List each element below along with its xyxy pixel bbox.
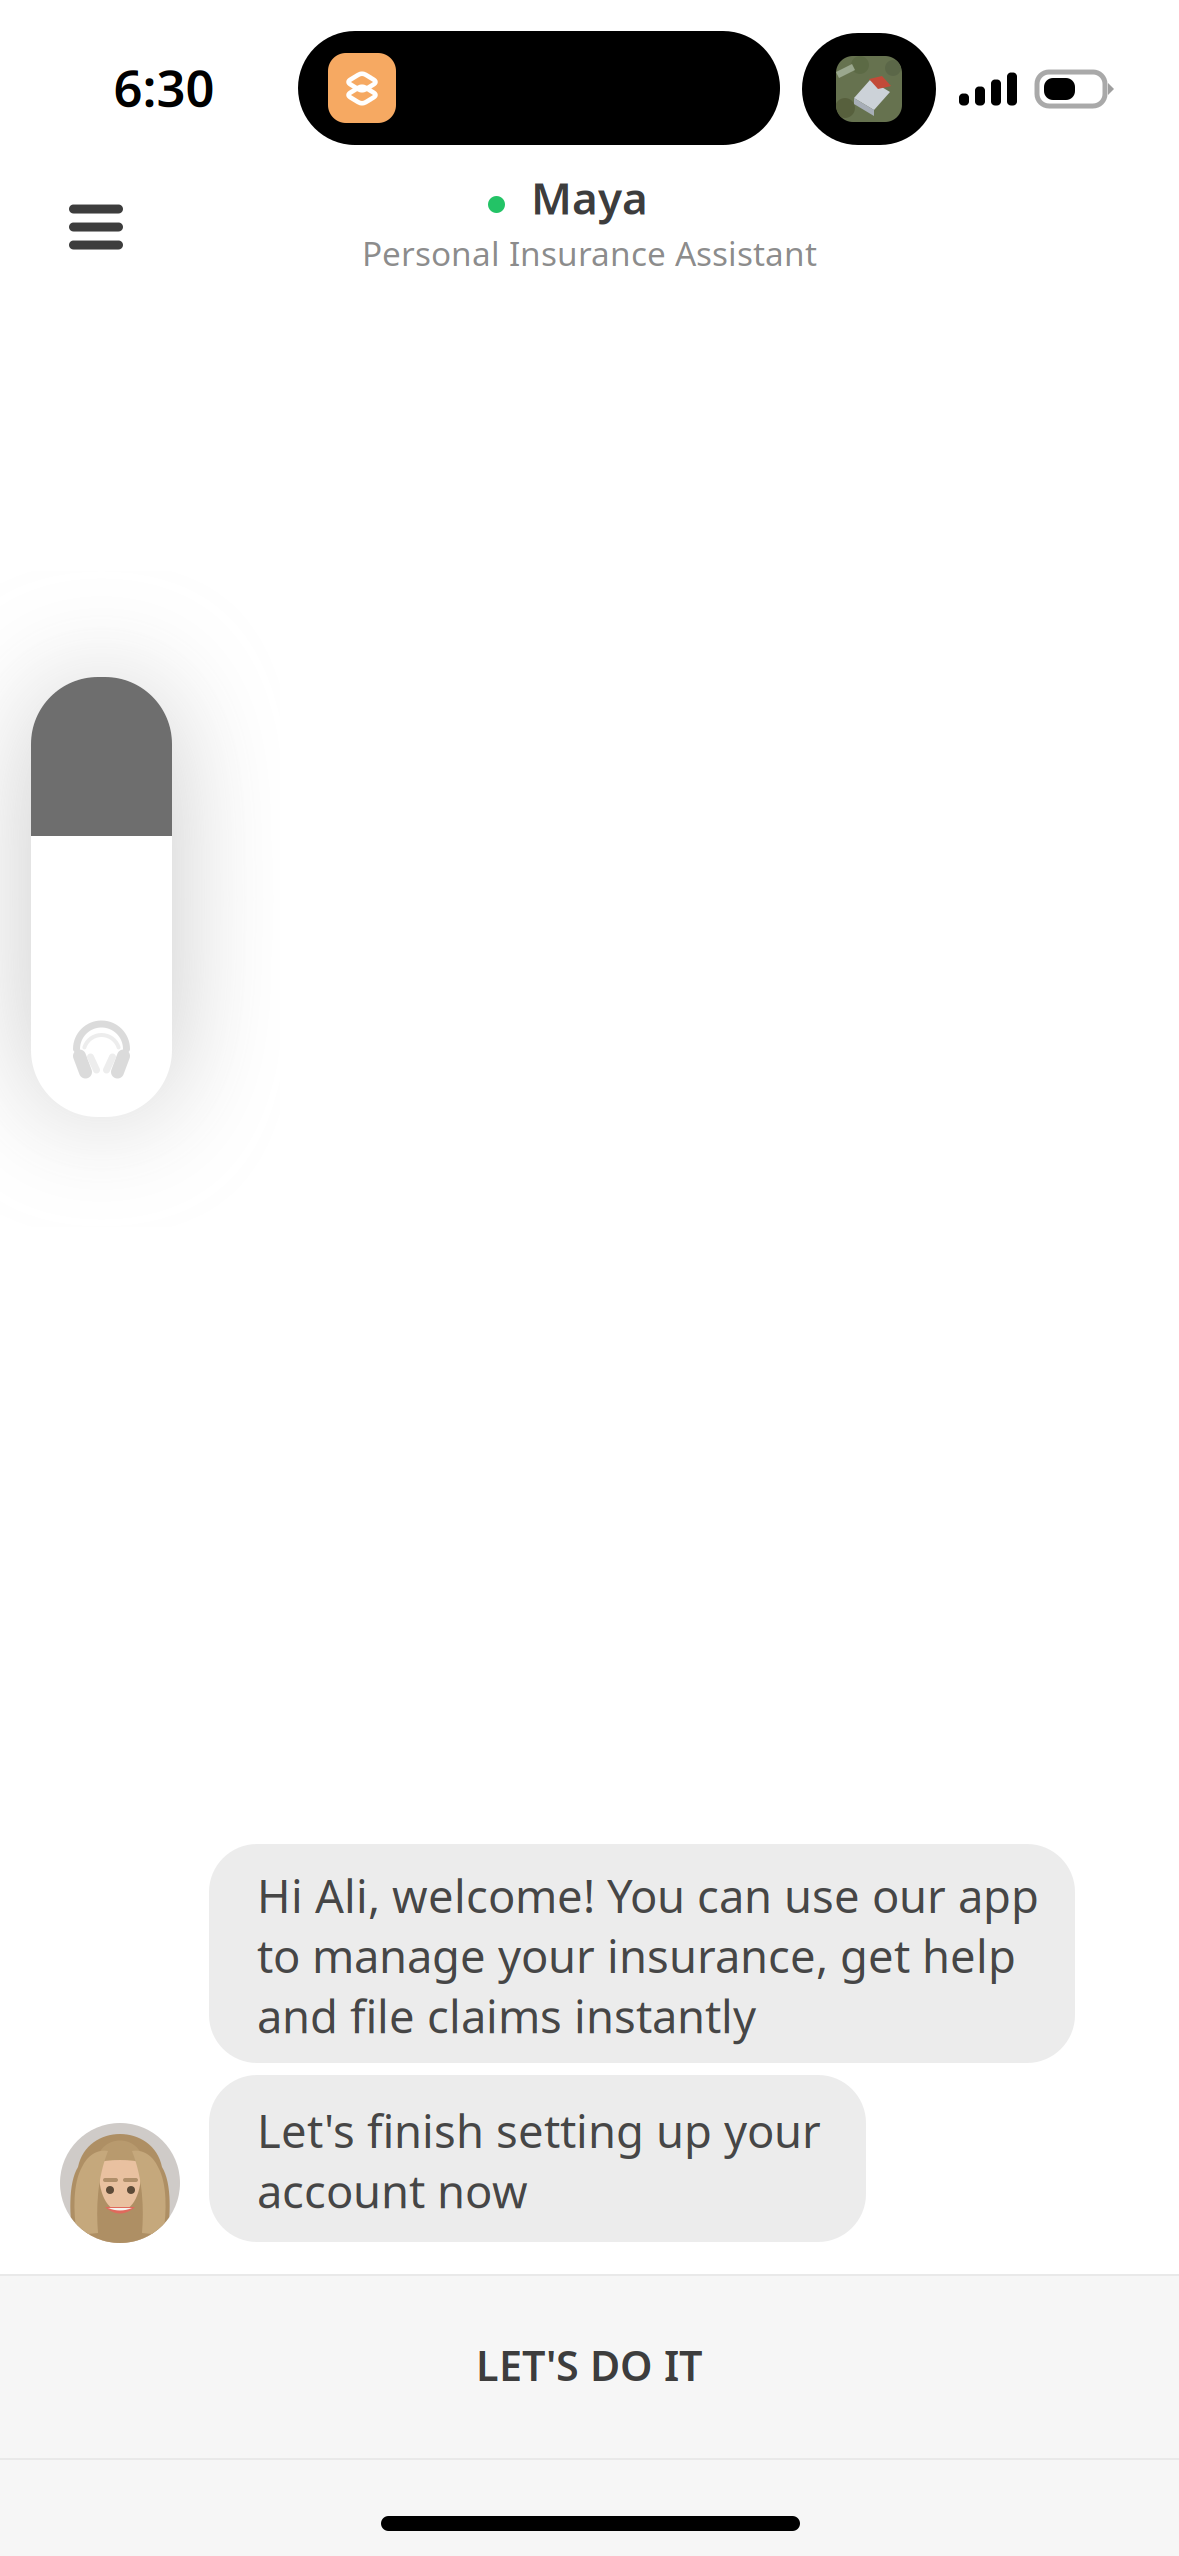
staticText: Let's finish setting up your account now xyxy=(257,2100,821,2221)
button[interactable]: Menu xyxy=(37,168,155,286)
staticText: LET'S DO IT xyxy=(476,2338,703,2392)
staticText: 6:30 xyxy=(113,53,214,121)
staticText: Personal Insurance Assistant xyxy=(362,231,817,275)
staticText: Maya xyxy=(531,168,648,227)
button[interactable]: LET'S DO IT xyxy=(0,2276,1179,2458)
staticText: Hi Ali, welcome! You can use our app to … xyxy=(257,1865,1039,2046)
